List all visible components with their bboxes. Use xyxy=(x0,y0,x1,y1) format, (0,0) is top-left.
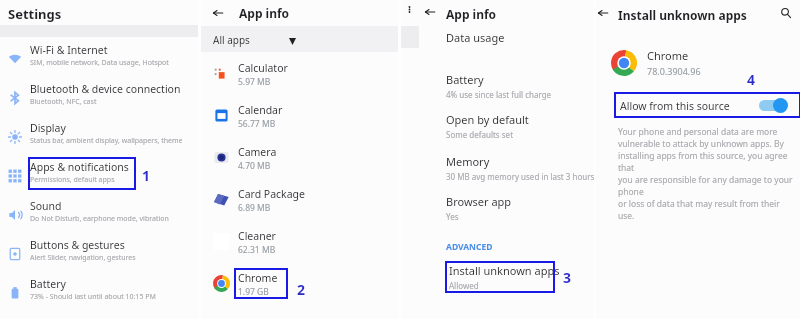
staticText: Bluetooth, NFC, cast xyxy=(30,97,97,107)
staticText: Sound xyxy=(30,199,62,213)
button[interactable]: Browser app xyxy=(401,192,593,232)
staticText: Data usage xyxy=(446,30,505,45)
staticText: 30 MB avg memory used in last 3 hours xyxy=(446,171,595,182)
staticText: Alert Slider, navigation, gestures xyxy=(30,253,136,263)
staticText: 6.89 MB xyxy=(238,202,271,214)
staticText: App info xyxy=(446,6,497,22)
button[interactable]: Open by default xyxy=(401,110,593,150)
staticText: Buttons & gestures xyxy=(30,238,125,252)
button[interactable]: Apps & notifications xyxy=(0,159,198,198)
button[interactable]: Back xyxy=(594,4,612,22)
button[interactable]: Calculator xyxy=(201,56,398,98)
staticText: Settings xyxy=(8,5,62,23)
staticText: 1 xyxy=(142,166,151,185)
staticText: All apps xyxy=(213,33,250,47)
button[interactable]: Back xyxy=(421,3,439,21)
staticText: Install unknown apps xyxy=(618,7,747,23)
staticText: App info xyxy=(239,5,290,21)
staticText: installing apps from this source, you ag… xyxy=(618,150,793,174)
staticText: you are responsible for any damage to yo… xyxy=(618,174,793,198)
staticText: Yes xyxy=(446,211,459,222)
staticText: Some defaults set xyxy=(446,129,514,140)
staticText: or loss of data that may result from the… xyxy=(618,198,793,222)
button[interactable]: More options xyxy=(403,3,415,15)
button[interactable]: Chrome xyxy=(611,48,691,77)
button[interactable]: Battery xyxy=(0,276,198,315)
button[interactable]: More options xyxy=(399,5,413,19)
staticText: Browser app xyxy=(446,194,512,209)
button[interactable]: Allow from this source xyxy=(614,92,800,118)
button[interactable]: Calendar xyxy=(201,98,398,140)
button[interactable]: Chrome xyxy=(201,266,398,308)
staticText: Permissions, default apps xyxy=(30,175,115,185)
staticText: Apps & notifications xyxy=(30,160,129,174)
staticText: Camera xyxy=(238,145,277,159)
staticText: Memory xyxy=(446,154,490,169)
staticText: 56.77 MB xyxy=(238,118,276,130)
staticText: Battery xyxy=(446,72,484,87)
staticText: Cleaner xyxy=(238,229,276,243)
staticText: Allowed xyxy=(449,280,479,291)
button[interactable]: Sound xyxy=(0,198,198,237)
staticText: vulnerable to attack by unknown apps. By xyxy=(618,138,784,150)
staticText: Wi-Fi & Internet xyxy=(30,43,108,57)
staticText: 62.31 MB xyxy=(238,244,276,256)
staticText: Do Not Disturb, earphone mode, vibration xyxy=(30,214,169,224)
button[interactable]: Card Package xyxy=(201,182,398,224)
staticText: Display xyxy=(30,121,66,135)
staticText: 2 xyxy=(297,280,306,299)
staticText: 4.70 MB xyxy=(238,160,271,172)
staticText: Calculator xyxy=(238,61,288,75)
button[interactable]: Memory xyxy=(401,152,593,192)
button[interactable]: Battery xyxy=(401,70,593,110)
staticText: Chrome xyxy=(238,271,278,285)
button[interactable]: Bluetooth & device connection xyxy=(0,81,198,120)
staticText: Status bar, ambient display, wallpapers,… xyxy=(30,136,183,146)
staticText: Card Package xyxy=(238,187,306,201)
button[interactable]: Display xyxy=(0,120,198,159)
button[interactable]: Camera xyxy=(201,140,398,182)
button[interactable]: Wi-Fi & Internet xyxy=(0,42,198,81)
staticText: Your phone and personal data are more xyxy=(618,126,778,138)
staticText: Open by default xyxy=(446,112,529,127)
staticText: Allow from this source xyxy=(620,99,730,113)
button[interactable]: Back xyxy=(209,4,227,22)
button[interactable]: Cleaner xyxy=(201,224,398,266)
staticText: 4% use since last full charge xyxy=(446,89,552,100)
staticText: Battery xyxy=(30,277,66,291)
staticText: 3 xyxy=(563,268,572,287)
staticText: 78.0.3904.96 xyxy=(647,65,701,77)
button[interactable]: Data usage xyxy=(401,28,593,68)
staticText: SIM, mobile network, Data usage, Hotspot xyxy=(30,58,169,68)
staticText: 1.97 GB xyxy=(238,286,269,298)
staticText: Bluetooth & device connection xyxy=(30,82,181,96)
staticText: 73% - Should last until about 10:15 PM xyxy=(30,292,156,302)
staticText: Chrome xyxy=(647,48,689,63)
staticText: 5.97 MB xyxy=(238,76,271,88)
button[interactable]: Search xyxy=(778,5,794,21)
button[interactable]: Install unknown apps xyxy=(401,258,593,298)
staticText: Install unknown apps xyxy=(449,263,560,278)
staticText: Calendar xyxy=(238,103,283,117)
staticText: ADVANCED xyxy=(446,241,493,253)
button[interactable]: Buttons & gestures xyxy=(0,237,198,276)
staticText: 4 xyxy=(747,70,756,89)
